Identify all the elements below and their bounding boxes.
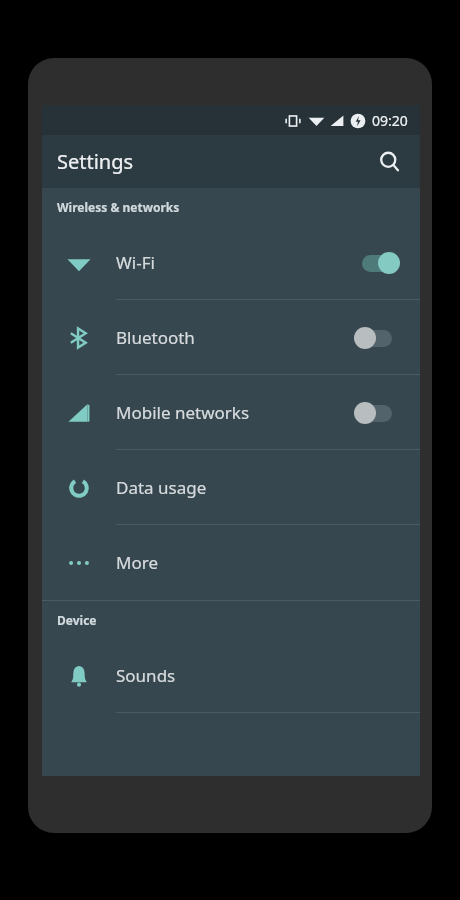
staticText: Data usage — [116, 476, 207, 499]
staticText: Mobile networks — [116, 401, 250, 424]
staticText: Wi-Fi — [116, 251, 155, 274]
button[interactable]: Mobile networks — [42, 375, 420, 450]
button[interactable]: Data usage — [42, 450, 420, 525]
button[interactable]: More — [42, 525, 420, 600]
staticText: Sounds — [116, 664, 176, 687]
button[interactable]: Toggle on — [354, 250, 400, 276]
button[interactable]: Search — [368, 140, 412, 184]
staticText: Wireless & networks — [57, 199, 180, 215]
button[interactable]: Bluetooth — [42, 300, 420, 375]
button[interactable]: Sounds — [42, 638, 420, 713]
staticText: Device — [57, 612, 97, 628]
button[interactable]: Toggle off — [354, 400, 400, 426]
button[interactable]: Toggle off — [354, 325, 400, 351]
staticText: 09:20 — [372, 111, 408, 130]
staticText: More — [116, 551, 158, 574]
staticText: Bluetooth — [116, 326, 195, 349]
button[interactable]: Wi-Fi — [42, 225, 420, 300]
staticText: Settings — [57, 148, 134, 175]
